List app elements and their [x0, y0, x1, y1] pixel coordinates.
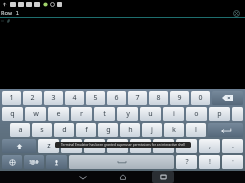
- button[interactable]: g: [98, 123, 118, 137]
- button[interactable]: 7: [128, 91, 147, 105]
- staticText: ?: [185, 157, 189, 167]
- button[interactable]: e: [48, 107, 69, 121]
- staticText: y: [126, 109, 130, 119]
- button[interactable]: v: [107, 139, 128, 153]
- button[interactable]: Recents: [152, 171, 174, 183]
- button[interactable]: a: [10, 123, 30, 137]
- button[interactable]: 2: [23, 91, 42, 105]
- staticText: ,: [209, 141, 211, 151]
- button[interactable]: b: [130, 139, 151, 153]
- button[interactable]: c: [84, 139, 105, 153]
- button[interactable]: 8: [149, 91, 168, 105]
- button[interactable]: 0: [191, 91, 210, 105]
- button[interactable]: 6: [107, 91, 126, 105]
- staticText: e: [56, 109, 61, 119]
- button[interactable]: 1: [2, 91, 21, 105]
- staticText: ': [232, 158, 234, 166]
- button[interactable]: m: [176, 139, 197, 153]
- button[interactable]: Backspace: [212, 91, 243, 105]
- button[interactable]: z: [38, 139, 59, 153]
- staticText: k: [172, 125, 176, 135]
- button[interactable]: i: [163, 107, 184, 121]
- staticText: n: [161, 141, 166, 151]
- button[interactable]: 9: [170, 91, 189, 105]
- button[interactable]: n: [153, 139, 174, 153]
- staticText: 8: [156, 93, 161, 103]
- button[interactable]: w: [25, 107, 46, 121]
- button[interactable]: s: [32, 123, 52, 137]
- staticText: 5: [93, 93, 98, 103]
- staticText: o: [194, 109, 199, 119]
- staticText: !: [209, 157, 211, 167]
- button[interactable]: f: [76, 123, 96, 137]
- button[interactable]: h: [120, 123, 140, 137]
- staticText: j: [151, 125, 153, 135]
- staticText: 2: [30, 93, 35, 103]
- button[interactable]: t: [94, 107, 115, 121]
- staticText: l: [195, 125, 197, 135]
- staticText: 0: [198, 93, 203, 103]
- staticText: Terminal Emulator has been granted super…: [61, 143, 185, 147]
- staticText: Row 1: [1, 9, 20, 17]
- button[interactable]: !@#: [24, 155, 44, 169]
- button[interactable]: Shift: [2, 139, 36, 153]
- staticText: !@#: [29, 159, 39, 166]
- button[interactable]: !: [199, 155, 220, 169]
- staticText: ~ #: [1, 18, 11, 25]
- button[interactable]: 3: [44, 91, 63, 105]
- button[interactable]: ,: [199, 139, 220, 153]
- button[interactable]: Language: [2, 155, 22, 169]
- staticText: 9: [177, 93, 182, 103]
- staticText: t: [103, 109, 106, 119]
- staticText: p: [217, 109, 222, 119]
- button[interactable]: Space: [69, 155, 174, 169]
- button[interactable]: y: [117, 107, 138, 121]
- staticText: g: [106, 125, 111, 135]
- button[interactable]: q: [2, 107, 23, 121]
- staticText: 7: [135, 93, 140, 103]
- button[interactable]: l: [186, 123, 206, 137]
- button[interactable]: Enter: [208, 123, 243, 137]
- staticText: .: [232, 141, 234, 151]
- staticText: b: [138, 141, 143, 151]
- staticText: x: [70, 141, 74, 151]
- button[interactable]: p: [209, 107, 230, 121]
- staticText: d: [62, 125, 67, 135]
- button[interactable]: Clear: [233, 10, 240, 17]
- button[interactable]: d: [54, 123, 74, 137]
- button[interactable]: Home: [112, 171, 134, 183]
- button[interactable]: x: [61, 139, 82, 153]
- staticText: u: [148, 109, 153, 119]
- staticText: q: [10, 109, 15, 119]
- button[interactable]: u: [140, 107, 161, 121]
- staticText: w: [33, 109, 39, 119]
- staticText: a: [18, 125, 23, 135]
- staticText: s: [40, 125, 44, 135]
- staticText: h: [128, 125, 133, 135]
- button[interactable]: ': [222, 155, 243, 169]
- button[interactable]: .: [222, 139, 243, 153]
- button[interactable]: r: [71, 107, 92, 121]
- staticText: 6: [114, 93, 119, 103]
- staticText: 4: [72, 93, 77, 103]
- staticText: i: [173, 109, 175, 119]
- button[interactable]: 4: [65, 91, 84, 105]
- button[interactable]: Back: [72, 171, 94, 183]
- button[interactable]: Voice input: [46, 155, 67, 169]
- button[interactable]: 5: [86, 91, 105, 105]
- staticText: 1: [9, 93, 14, 103]
- button[interactable]: k: [164, 123, 184, 137]
- staticText: v: [116, 141, 120, 151]
- staticText: c: [93, 141, 97, 151]
- staticText: m: [183, 141, 190, 151]
- staticText: f: [85, 125, 88, 135]
- button[interactable]: ?: [176, 155, 197, 169]
- button[interactable]: [232, 107, 243, 121]
- staticText: z: [47, 141, 51, 151]
- button[interactable]: j: [142, 123, 162, 137]
- staticText: 3: [51, 93, 56, 103]
- button[interactable]: o: [186, 107, 207, 121]
- staticText: r: [80, 109, 83, 119]
